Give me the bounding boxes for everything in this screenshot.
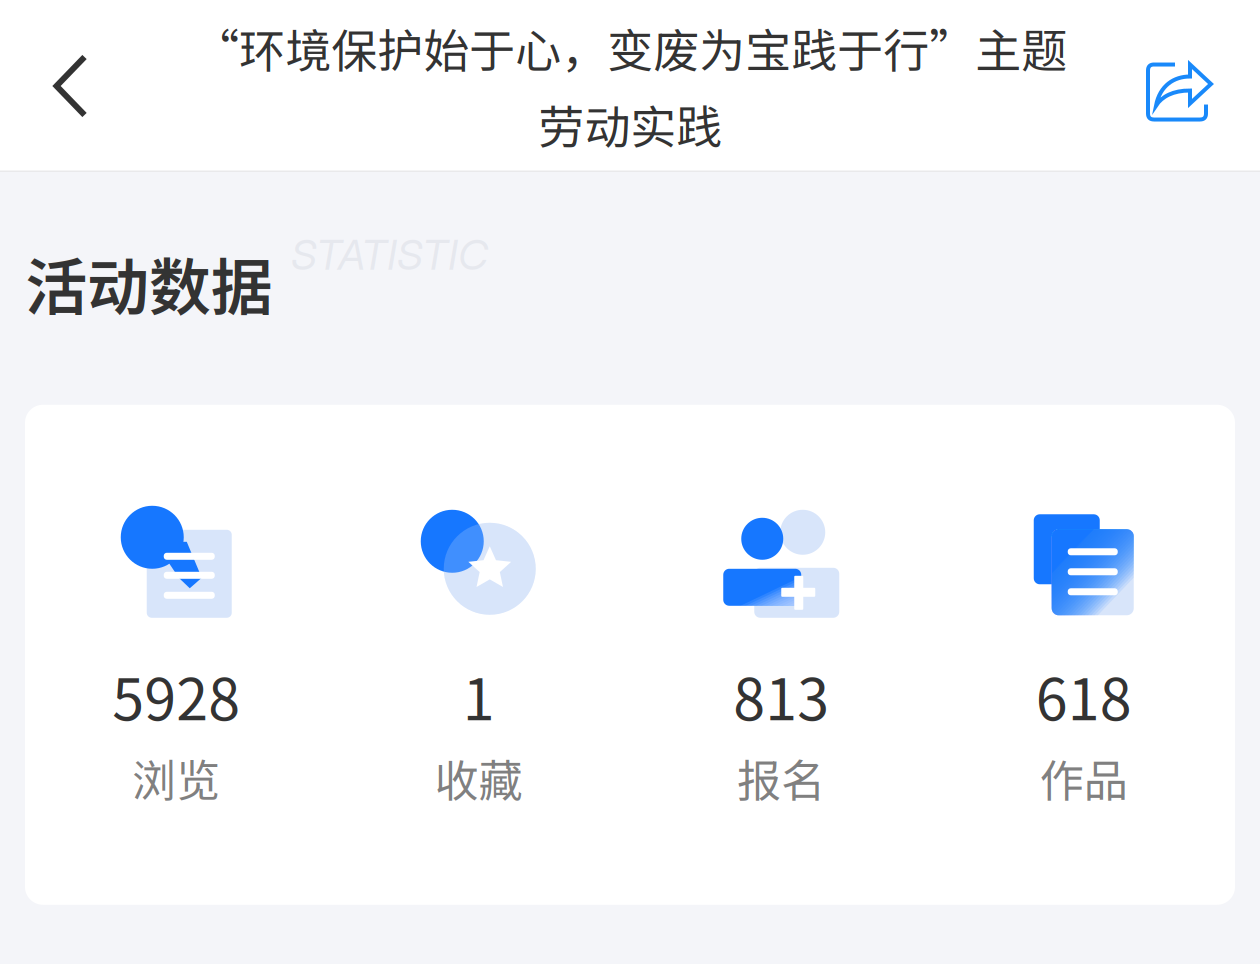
staticText: 618 (1036, 654, 1132, 737)
staticText: 报名 (737, 746, 825, 809)
staticText: 收藏 (435, 746, 523, 809)
staticText: “环境保护始于心，变废为宝践于行”主题 劳动实践 (193, 14, 1067, 158)
staticText: STATISTIC (291, 229, 488, 280)
staticText: 浏览 (132, 746, 220, 809)
staticText: 1 (463, 654, 495, 737)
button[interactable]: Share (1099, 0, 1260, 172)
staticText: 作品 (1040, 746, 1128, 809)
staticText: 5928 (112, 654, 240, 737)
staticText: 813 (733, 654, 829, 737)
staticText: 活动数据 (25, 238, 273, 328)
button[interactable]: Back (0, 0, 141, 172)
